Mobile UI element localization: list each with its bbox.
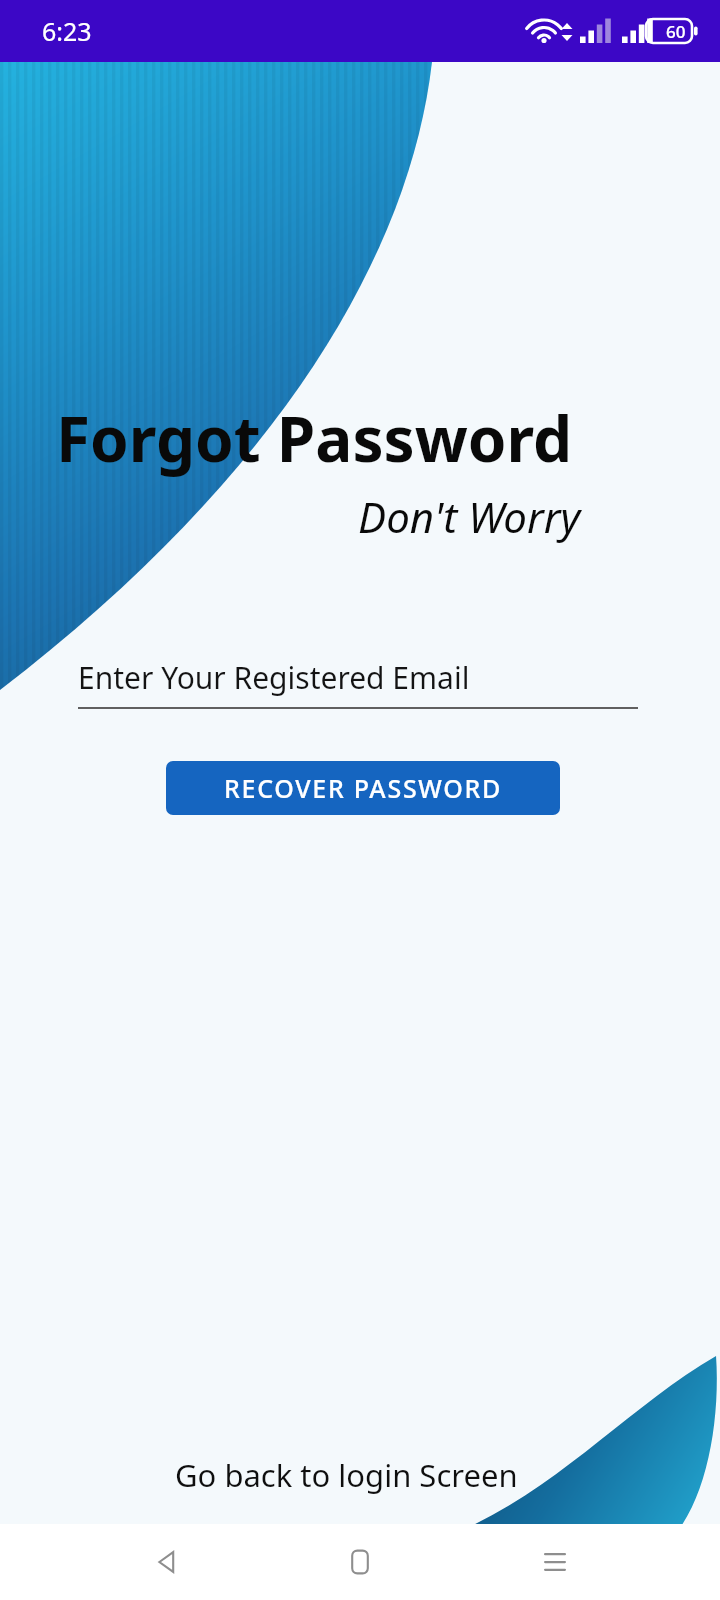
staticText: Enter Your Registered Email [78,657,470,698]
button[interactable]: Enter Your Registered Email [78,657,638,709]
button[interactable]: RECOVER PASSWORD [166,761,560,815]
staticText: 60 [666,20,686,43]
staticText: 6:23 [42,14,92,48]
button[interactable]: Go back to login Screen [169,1450,524,1500]
staticText: Forgot Password [56,396,696,480]
button[interactable]: Recent apps [526,1533,584,1591]
button[interactable]: Back [137,1533,195,1591]
staticText: RECOVER PASSWORD [224,771,503,805]
button[interactable]: Home [331,1533,389,1591]
staticText: Don't Worry [0,488,580,545]
staticText: Go back to login Screen [175,1454,518,1496]
